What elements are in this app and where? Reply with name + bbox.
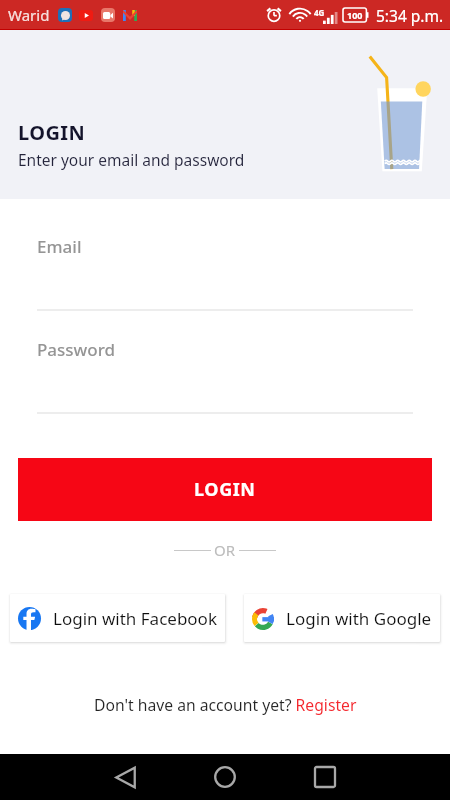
staticText: Email bbox=[37, 235, 82, 258]
staticText: Login with Google bbox=[286, 607, 432, 630]
button[interactable]: Home bbox=[203, 755, 247, 799]
staticText: OR bbox=[214, 540, 236, 560]
staticText: LOGIN bbox=[18, 119, 86, 146]
staticText: 4G bbox=[314, 7, 325, 18]
button[interactable]: Back bbox=[103, 755, 147, 799]
staticText: 100 bbox=[347, 9, 363, 21]
staticText: Don't have an account yet? Register bbox=[94, 694, 357, 715]
button[interactable]: Don't have an account yet? Register bbox=[0, 694, 450, 715]
staticText: 5:34 p.m. bbox=[376, 5, 444, 26]
staticText: LOGIN bbox=[194, 477, 256, 502]
staticText: Password bbox=[37, 338, 116, 361]
staticText: Enter your email and password bbox=[18, 149, 245, 170]
button[interactable]: Email bbox=[37, 235, 413, 311]
staticText: Warid bbox=[8, 5, 50, 25]
button[interactable]: LOGIN bbox=[18, 458, 432, 521]
button[interactable]: Login with Facebook bbox=[18, 594, 217, 642]
button[interactable]: Login with Google bbox=[252, 594, 432, 642]
button[interactable]: Password bbox=[37, 338, 413, 414]
staticText: Login with Facebook bbox=[53, 607, 217, 630]
button[interactable]: Recent apps bbox=[303, 755, 347, 799]
